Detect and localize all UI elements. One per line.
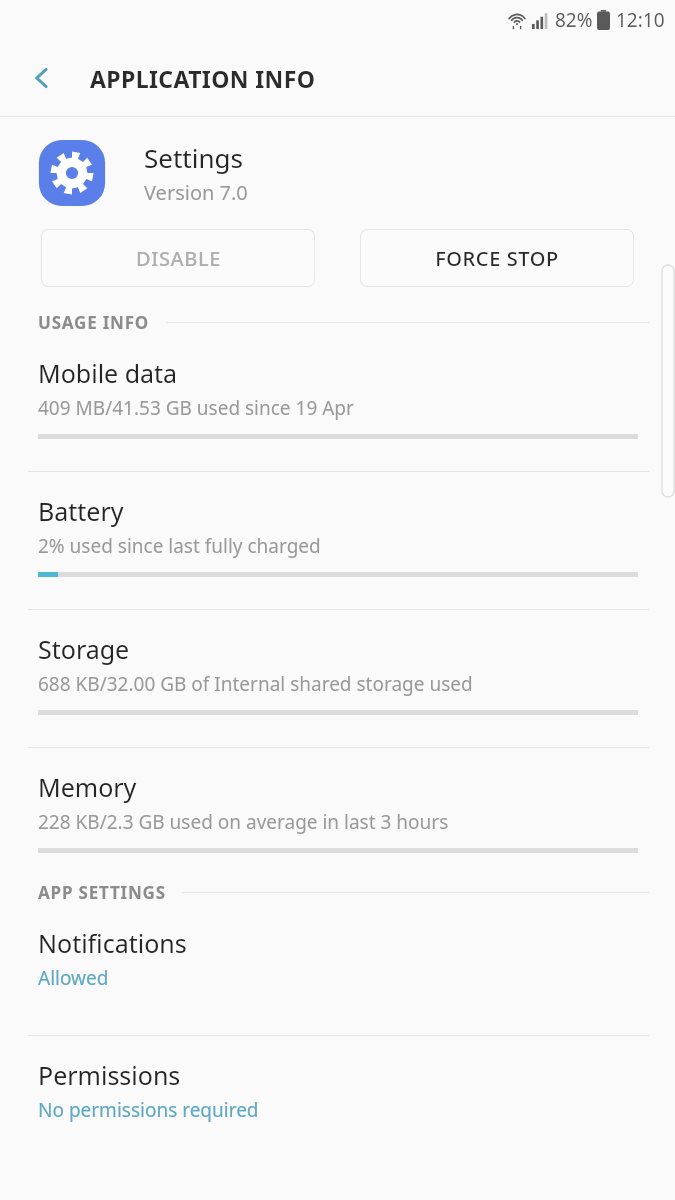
button[interactable]: FORCE STOP (360, 229, 634, 287)
button[interactable]: Memory (0, 748, 675, 853)
button[interactable]: Permissions (0, 1036, 675, 1135)
staticText: USAGE INFO (38, 311, 150, 334)
staticText: 12:10 (616, 7, 665, 33)
button[interactable]: DISABLE (41, 229, 315, 287)
staticText: Memory (38, 770, 137, 804)
staticText: Version 7.0 (144, 179, 248, 206)
button[interactable]: Settings (0, 117, 675, 229)
staticText: APP SETTINGS (38, 881, 166, 904)
staticText: FORCE STOP (435, 245, 559, 272)
staticText: 409 MB/41.53 GB used since 19 Apr (38, 395, 354, 421)
staticText: 688 KB/32.00 GB of Internal shared stora… (38, 671, 473, 697)
button[interactable]: Mobile data (0, 334, 675, 439)
staticText: Notifications (38, 926, 187, 960)
staticText: Permissions (38, 1058, 181, 1092)
staticText: 82% (555, 7, 593, 33)
staticText: 2% used since last fully charged (38, 533, 321, 559)
staticText: DISABLE (136, 245, 221, 272)
staticText: Mobile data (38, 356, 178, 390)
staticText: Settings (144, 140, 243, 175)
staticText: Storage (38, 632, 130, 666)
staticText: 228 KB/2.3 GB used on average in last 3 … (38, 809, 449, 835)
staticText: No permissions required (38, 1097, 259, 1123)
button[interactable]: Storage (0, 610, 675, 715)
button[interactable]: Notifications (0, 904, 675, 1003)
staticText: Allowed (38, 965, 109, 991)
button[interactable]: Back (18, 54, 66, 102)
staticText: APPLICATION INFO (90, 63, 316, 94)
staticText: Battery (38, 494, 124, 528)
button[interactable]: Battery (0, 472, 675, 577)
